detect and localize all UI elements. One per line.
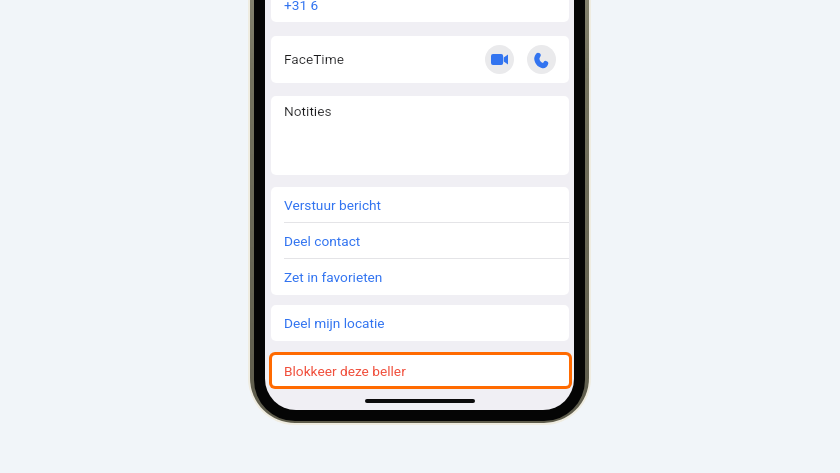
staticText: Blokkeer deze beller <box>284 363 406 379</box>
button[interactable]: FaceTime video call <box>485 45 514 74</box>
staticText: Notities <box>284 103 332 119</box>
button[interactable]: Blokkeer deze beller <box>272 355 569 386</box>
staticText: Verstuur bericht <box>284 197 382 213</box>
staticText: +31 6 <box>284 0 319 13</box>
staticText: FaceTime <box>284 51 344 67</box>
button[interactable]: Zet in favorieten <box>271 259 569 294</box>
button[interactable]: Notities <box>271 96 569 175</box>
button[interactable]: Deel contact <box>271 223 569 258</box>
staticText: Deel contact <box>284 233 361 249</box>
button[interactable]: +31 6 <box>271 0 569 22</box>
button[interactable]: Deel mijn locatie <box>271 305 569 341</box>
staticText: Zet in favorieten <box>284 269 383 285</box>
button[interactable]: FaceTime audio call <box>527 45 556 74</box>
button[interactable]: Verstuur bericht <box>271 187 569 222</box>
staticText: Deel mijn locatie <box>284 315 385 331</box>
